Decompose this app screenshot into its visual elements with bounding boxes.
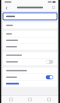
button[interactable]: Menu <box>50 4 56 10</box>
button[interactable] <box>3 59 57 65</box>
button[interactable] <box>3 74 57 81</box>
button[interactable] <box>3 44 57 50</box>
button[interactable] <box>3 52 57 59</box>
staticText: ‹ <box>5 3 7 12</box>
button[interactable]: Back <box>3 4 9 10</box>
button[interactable]: Search <box>20 96 39 103</box>
button[interactable] <box>3 22 57 28</box>
button[interactable] <box>3 81 57 87</box>
button[interactable] <box>3 31 57 37</box>
button[interactable]: Profile <box>39 96 58 103</box>
button[interactable]: Home <box>1 96 20 103</box>
button[interactable] <box>3 68 57 74</box>
button[interactable]: Toggle on <box>45 75 54 80</box>
button[interactable] <box>3 37 57 44</box>
button[interactable] <box>3 13 57 20</box>
button[interactable]: Toggle off <box>45 59 54 64</box>
